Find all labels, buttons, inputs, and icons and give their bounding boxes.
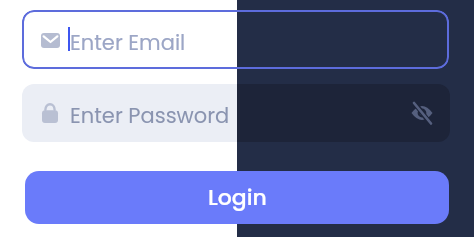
button[interactable]: Login [25, 171, 449, 224]
staticText: Login [208, 182, 267, 213]
button[interactable]: Enter Email [22, 10, 449, 69]
button[interactable] [410, 101, 434, 125]
button[interactable]: Enter Password [22, 84, 450, 142]
staticText: Enter Password [70, 101, 230, 130]
staticText: Enter Email [70, 28, 186, 57]
